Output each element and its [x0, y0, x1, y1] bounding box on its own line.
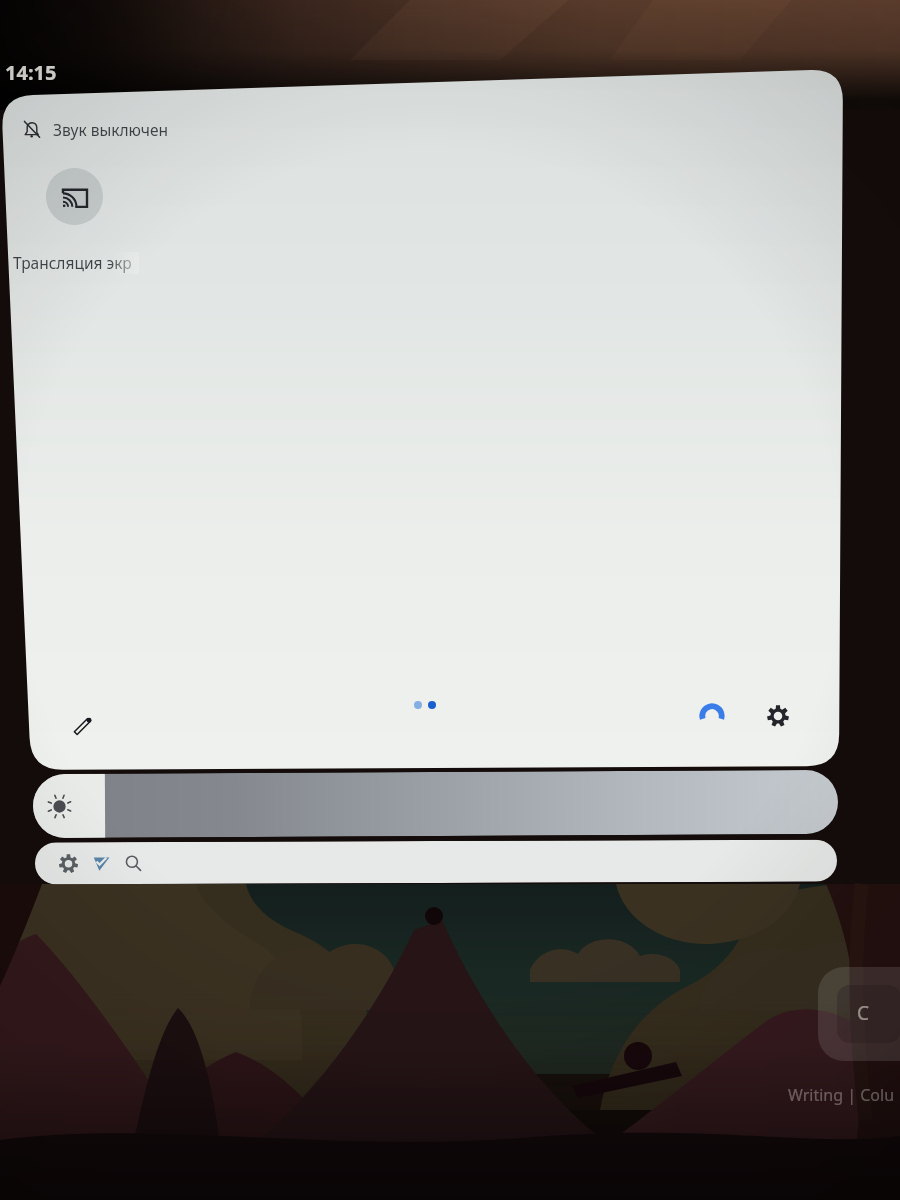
staticText: Трансляция экр	[13, 252, 132, 273]
button[interactable]: Звук выключен	[16, 110, 216, 148]
button[interactable]: Brightness	[33, 770, 838, 838]
button[interactable]: Battery saver	[690, 694, 734, 738]
button[interactable]: Трансляция экрана	[46, 168, 103, 225]
button[interactable]: Search	[121, 851, 145, 875]
button[interactable]: Edit tiles	[61, 701, 105, 745]
button[interactable]: Settings	[56, 851, 80, 875]
staticText: 14:15	[5, 59, 57, 86]
button[interactable]: Settings	[756, 694, 800, 738]
staticText: C	[857, 1000, 870, 1026]
button[interactable]: Settings	[35, 840, 837, 884]
staticText: Writing | Colu	[788, 1084, 895, 1106]
staticText: Звук выключен	[53, 119, 168, 140]
button[interactable]: Assistant	[89, 851, 113, 875]
